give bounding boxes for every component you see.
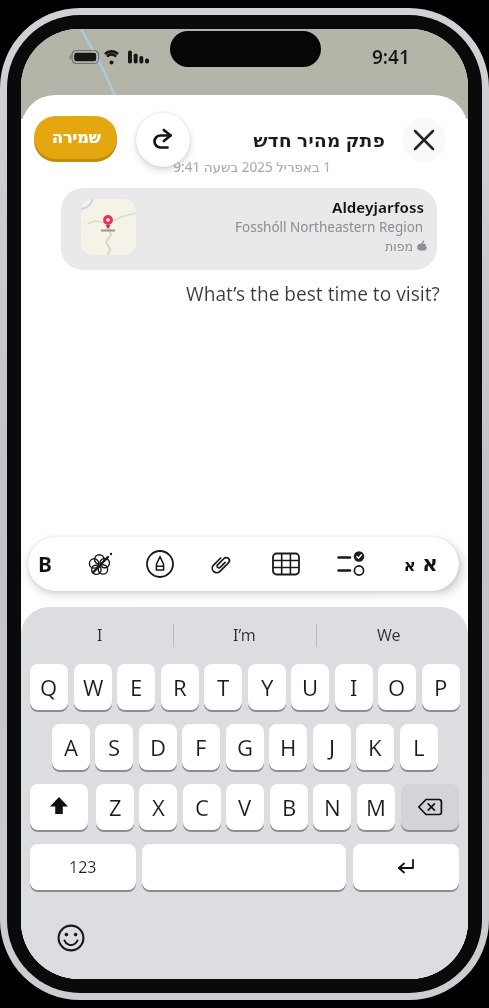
- staticText: What’s the best time to visit?: [186, 281, 440, 307]
- staticText: K: [368, 732, 382, 762]
- staticText: 9:41: [372, 44, 410, 68]
- button[interactable]: [401, 784, 459, 830]
- button[interactable]: [61, 188, 437, 270]
- button[interactable]: [353, 844, 459, 890]
- button[interactable]: L: [400, 724, 438, 770]
- staticText: G: [237, 732, 254, 762]
- button[interactable]: שמירה: [34, 116, 117, 159]
- button[interactable]: [30, 784, 88, 830]
- button[interactable]: U: [291, 664, 329, 710]
- staticText: N: [324, 792, 341, 822]
- staticText: F: [195, 732, 207, 762]
- staticText: W: [83, 672, 104, 702]
- button[interactable]: E: [117, 664, 155, 710]
- button[interactable]: C: [183, 784, 221, 830]
- button[interactable]: V: [226, 784, 264, 830]
- button[interactable]: O: [378, 664, 416, 710]
- button[interactable]: B: [270, 784, 308, 830]
- staticText: V: [238, 792, 252, 822]
- staticText: מפות: [385, 239, 413, 254]
- staticText: פתק מהיר חדש: [253, 127, 385, 153]
- button[interactable]: Q: [30, 664, 68, 710]
- staticText: Fosshóll Northeastern Region: [235, 218, 424, 236]
- staticText: I’m: [233, 624, 256, 646]
- button[interactable]: N: [313, 784, 351, 830]
- button[interactable]: Y: [248, 664, 286, 710]
- staticText: E: [130, 672, 143, 702]
- button[interactable]: F: [182, 724, 220, 770]
- staticText: 1 באפריל 2025 בשעה 9:41: [173, 158, 331, 176]
- staticText: Q: [40, 672, 58, 702]
- button[interactable]: I: [335, 664, 373, 710]
- staticText: H: [280, 732, 297, 762]
- button[interactable]: א: [400, 552, 418, 578]
- button[interactable]: [144, 548, 176, 580]
- button[interactable]: P: [422, 664, 460, 710]
- staticText: Y: [261, 672, 274, 702]
- button[interactable]: H: [269, 724, 307, 770]
- staticText: U: [302, 672, 319, 702]
- staticText: C: [195, 792, 209, 822]
- staticText: P: [434, 672, 448, 702]
- button[interactable]: [335, 548, 367, 580]
- button[interactable]: R: [161, 664, 199, 710]
- button[interactable]: B: [29, 548, 61, 580]
- staticText: שמירה: [51, 128, 101, 147]
- button[interactable]: M: [357, 784, 395, 830]
- staticText: M: [366, 792, 386, 822]
- staticText: R: [173, 672, 187, 702]
- button[interactable]: G: [226, 724, 264, 770]
- staticText: X: [152, 792, 165, 822]
- button[interactable]: A: [52, 724, 90, 770]
- staticText: O: [388, 672, 406, 702]
- staticText: I: [350, 672, 358, 702]
- staticText: J: [329, 732, 336, 762]
- button[interactable]: X: [139, 784, 177, 830]
- staticText: L: [413, 732, 425, 762]
- staticText: Aldeyjarfoss: [332, 197, 424, 217]
- staticText: B: [38, 550, 52, 579]
- button[interactable]: [402, 118, 446, 162]
- button[interactable]: J: [313, 724, 351, 770]
- button[interactable]: W: [74, 664, 112, 710]
- staticText: S: [108, 732, 121, 762]
- staticText: B: [282, 792, 297, 822]
- button[interactable]: Z: [96, 784, 134, 830]
- button[interactable]: [57, 924, 85, 952]
- button[interactable]: T: [204, 664, 242, 710]
- button[interactable]: K: [356, 724, 394, 770]
- staticText: א: [403, 555, 416, 575]
- staticText: א: [421, 551, 438, 577]
- button[interactable]: [142, 844, 346, 890]
- staticText: T: [217, 672, 230, 702]
- staticText: Z: [109, 792, 122, 822]
- button[interactable]: [205, 548, 237, 580]
- button[interactable]: D: [139, 724, 177, 770]
- staticText: We: [377, 624, 401, 646]
- staticText: D: [150, 732, 167, 762]
- button[interactable]: 123: [30, 844, 136, 890]
- button[interactable]: [270, 548, 302, 580]
- button[interactable]: [85, 548, 117, 580]
- staticText: A: [64, 732, 79, 762]
- button[interactable]: S: [95, 724, 133, 770]
- button[interactable]: [136, 113, 190, 167]
- staticText: 123: [69, 856, 97, 878]
- staticText: I: [97, 624, 103, 646]
